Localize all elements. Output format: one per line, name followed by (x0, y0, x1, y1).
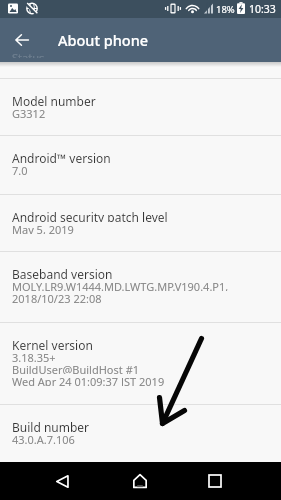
staticText: Wed Apr 24 01:09:37 JST 2019 (12, 374, 165, 386)
staticText: About phone (58, 30, 149, 50)
button[interactable]: Build number (0, 405, 281, 463)
button[interactable]: Android™ version (0, 136, 281, 194)
staticText: Kernel version (12, 337, 93, 350)
button[interactable]: Back (32, 462, 92, 500)
button[interactable]: Recents (185, 462, 245, 500)
staticText: 3.18.35+ (12, 350, 56, 362)
button[interactable]: Home (110, 462, 170, 500)
staticText: G3312 (12, 106, 46, 118)
staticText: May 5, 2019 (12, 222, 74, 234)
staticText: 43.0.A.7.106 (12, 432, 75, 444)
button[interactable]: Model number (0, 79, 281, 135)
staticText: Build number (12, 419, 90, 432)
button[interactable]: Android security patch level (0, 195, 281, 251)
button[interactable]: Kernel version (0, 323, 281, 404)
staticText: 18% (216, 3, 235, 16)
staticText: BuildUser@BuildHost #1 (12, 362, 140, 374)
staticText: Baseband version (12, 266, 113, 279)
staticText: Android security patch level (12, 209, 168, 222)
staticText: Status (12, 54, 45, 58)
button[interactable]: Back (0, 18, 44, 62)
staticText: 2018/10/23 22:08 (12, 291, 102, 303)
staticText: 7.0 (12, 163, 28, 175)
staticText: Android™ version (12, 150, 111, 163)
staticText: Model number (12, 93, 96, 106)
staticText: 10:33 (249, 2, 276, 16)
button[interactable]: Baseband version (0, 252, 281, 322)
staticText: MOLY.LR9.W1444.MD.LWTG.MP.V190.4.P1, (12, 279, 229, 291)
